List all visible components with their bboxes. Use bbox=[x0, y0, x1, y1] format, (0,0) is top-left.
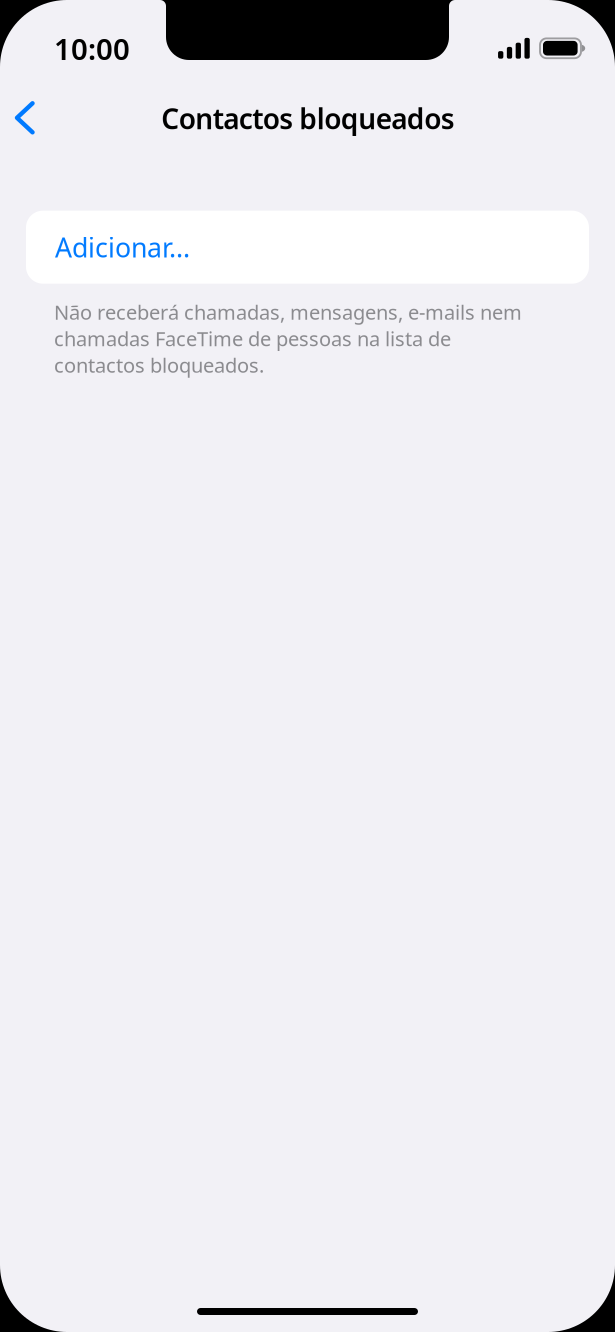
staticText: Contactos bloqueados bbox=[161, 100, 455, 137]
staticText: Adicionar... bbox=[55, 229, 190, 265]
button[interactable]: Adicionar... bbox=[26, 211, 589, 284]
button[interactable]: Voltar bbox=[0, 82, 66, 154]
staticText: Não receberá chamadas, mensagens, e-mail… bbox=[54, 299, 522, 378]
staticText: 10:00 bbox=[54, 29, 130, 68]
